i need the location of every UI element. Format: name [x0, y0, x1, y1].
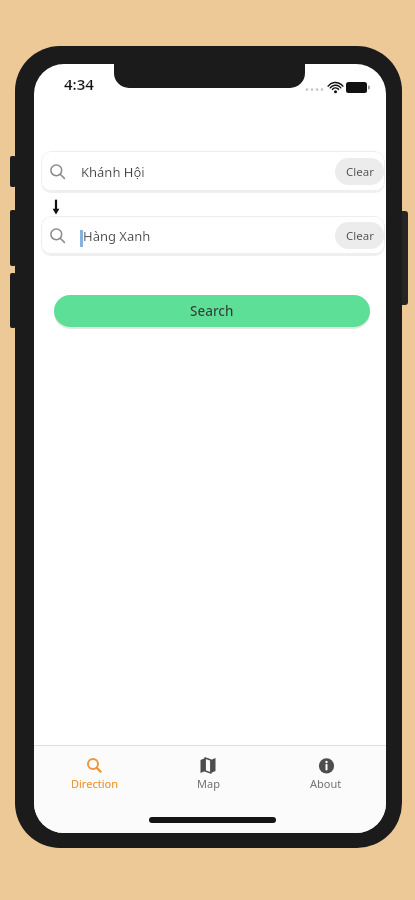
button[interactable]: Map — [168, 748, 248, 796]
button[interactable]: Clear — [335, 158, 384, 185]
button[interactable]: Search — [54, 295, 370, 327]
button[interactable]: Khánh Hội — [41, 151, 385, 191]
staticText: Hàng Xanh — [83, 227, 151, 245]
staticText: Direction — [71, 776, 118, 791]
staticText: Clear — [346, 164, 374, 180]
staticText: Search — [190, 302, 234, 320]
button[interactable]: About — [286, 748, 366, 796]
button[interactable]: Hàng Xanh — [41, 216, 385, 254]
staticText: About — [310, 776, 342, 791]
staticText: Khánh Hội — [81, 163, 145, 181]
staticText: Clear — [346, 228, 374, 244]
staticText: Map — [197, 776, 220, 791]
button[interactable]: Direction — [54, 748, 134, 796]
button[interactable]: Clear — [335, 222, 384, 249]
staticText: 4:34 — [64, 74, 94, 94]
